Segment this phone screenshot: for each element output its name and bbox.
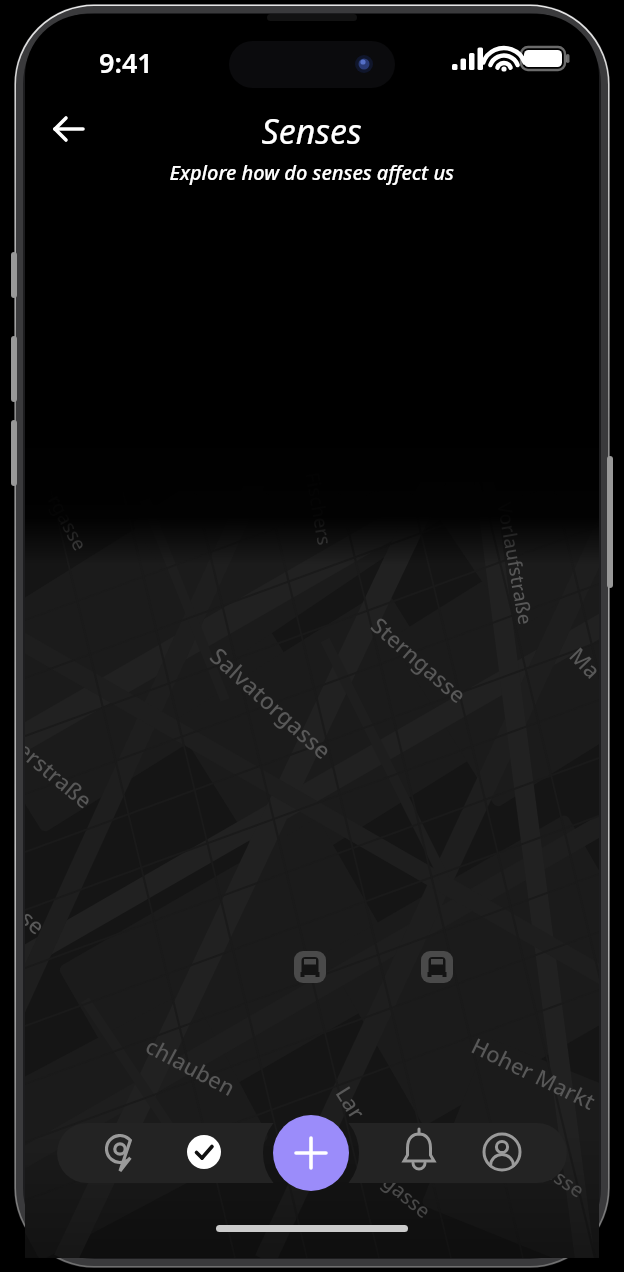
button[interactable]: Map [88, 1124, 152, 1182]
button[interactable]: Add [273, 1115, 349, 1191]
button[interactable]: Tasks [172, 1124, 236, 1182]
button[interactable]: Notifications [387, 1124, 451, 1182]
button[interactable]: Profile [470, 1124, 534, 1182]
button[interactable]: Back [40, 106, 90, 152]
